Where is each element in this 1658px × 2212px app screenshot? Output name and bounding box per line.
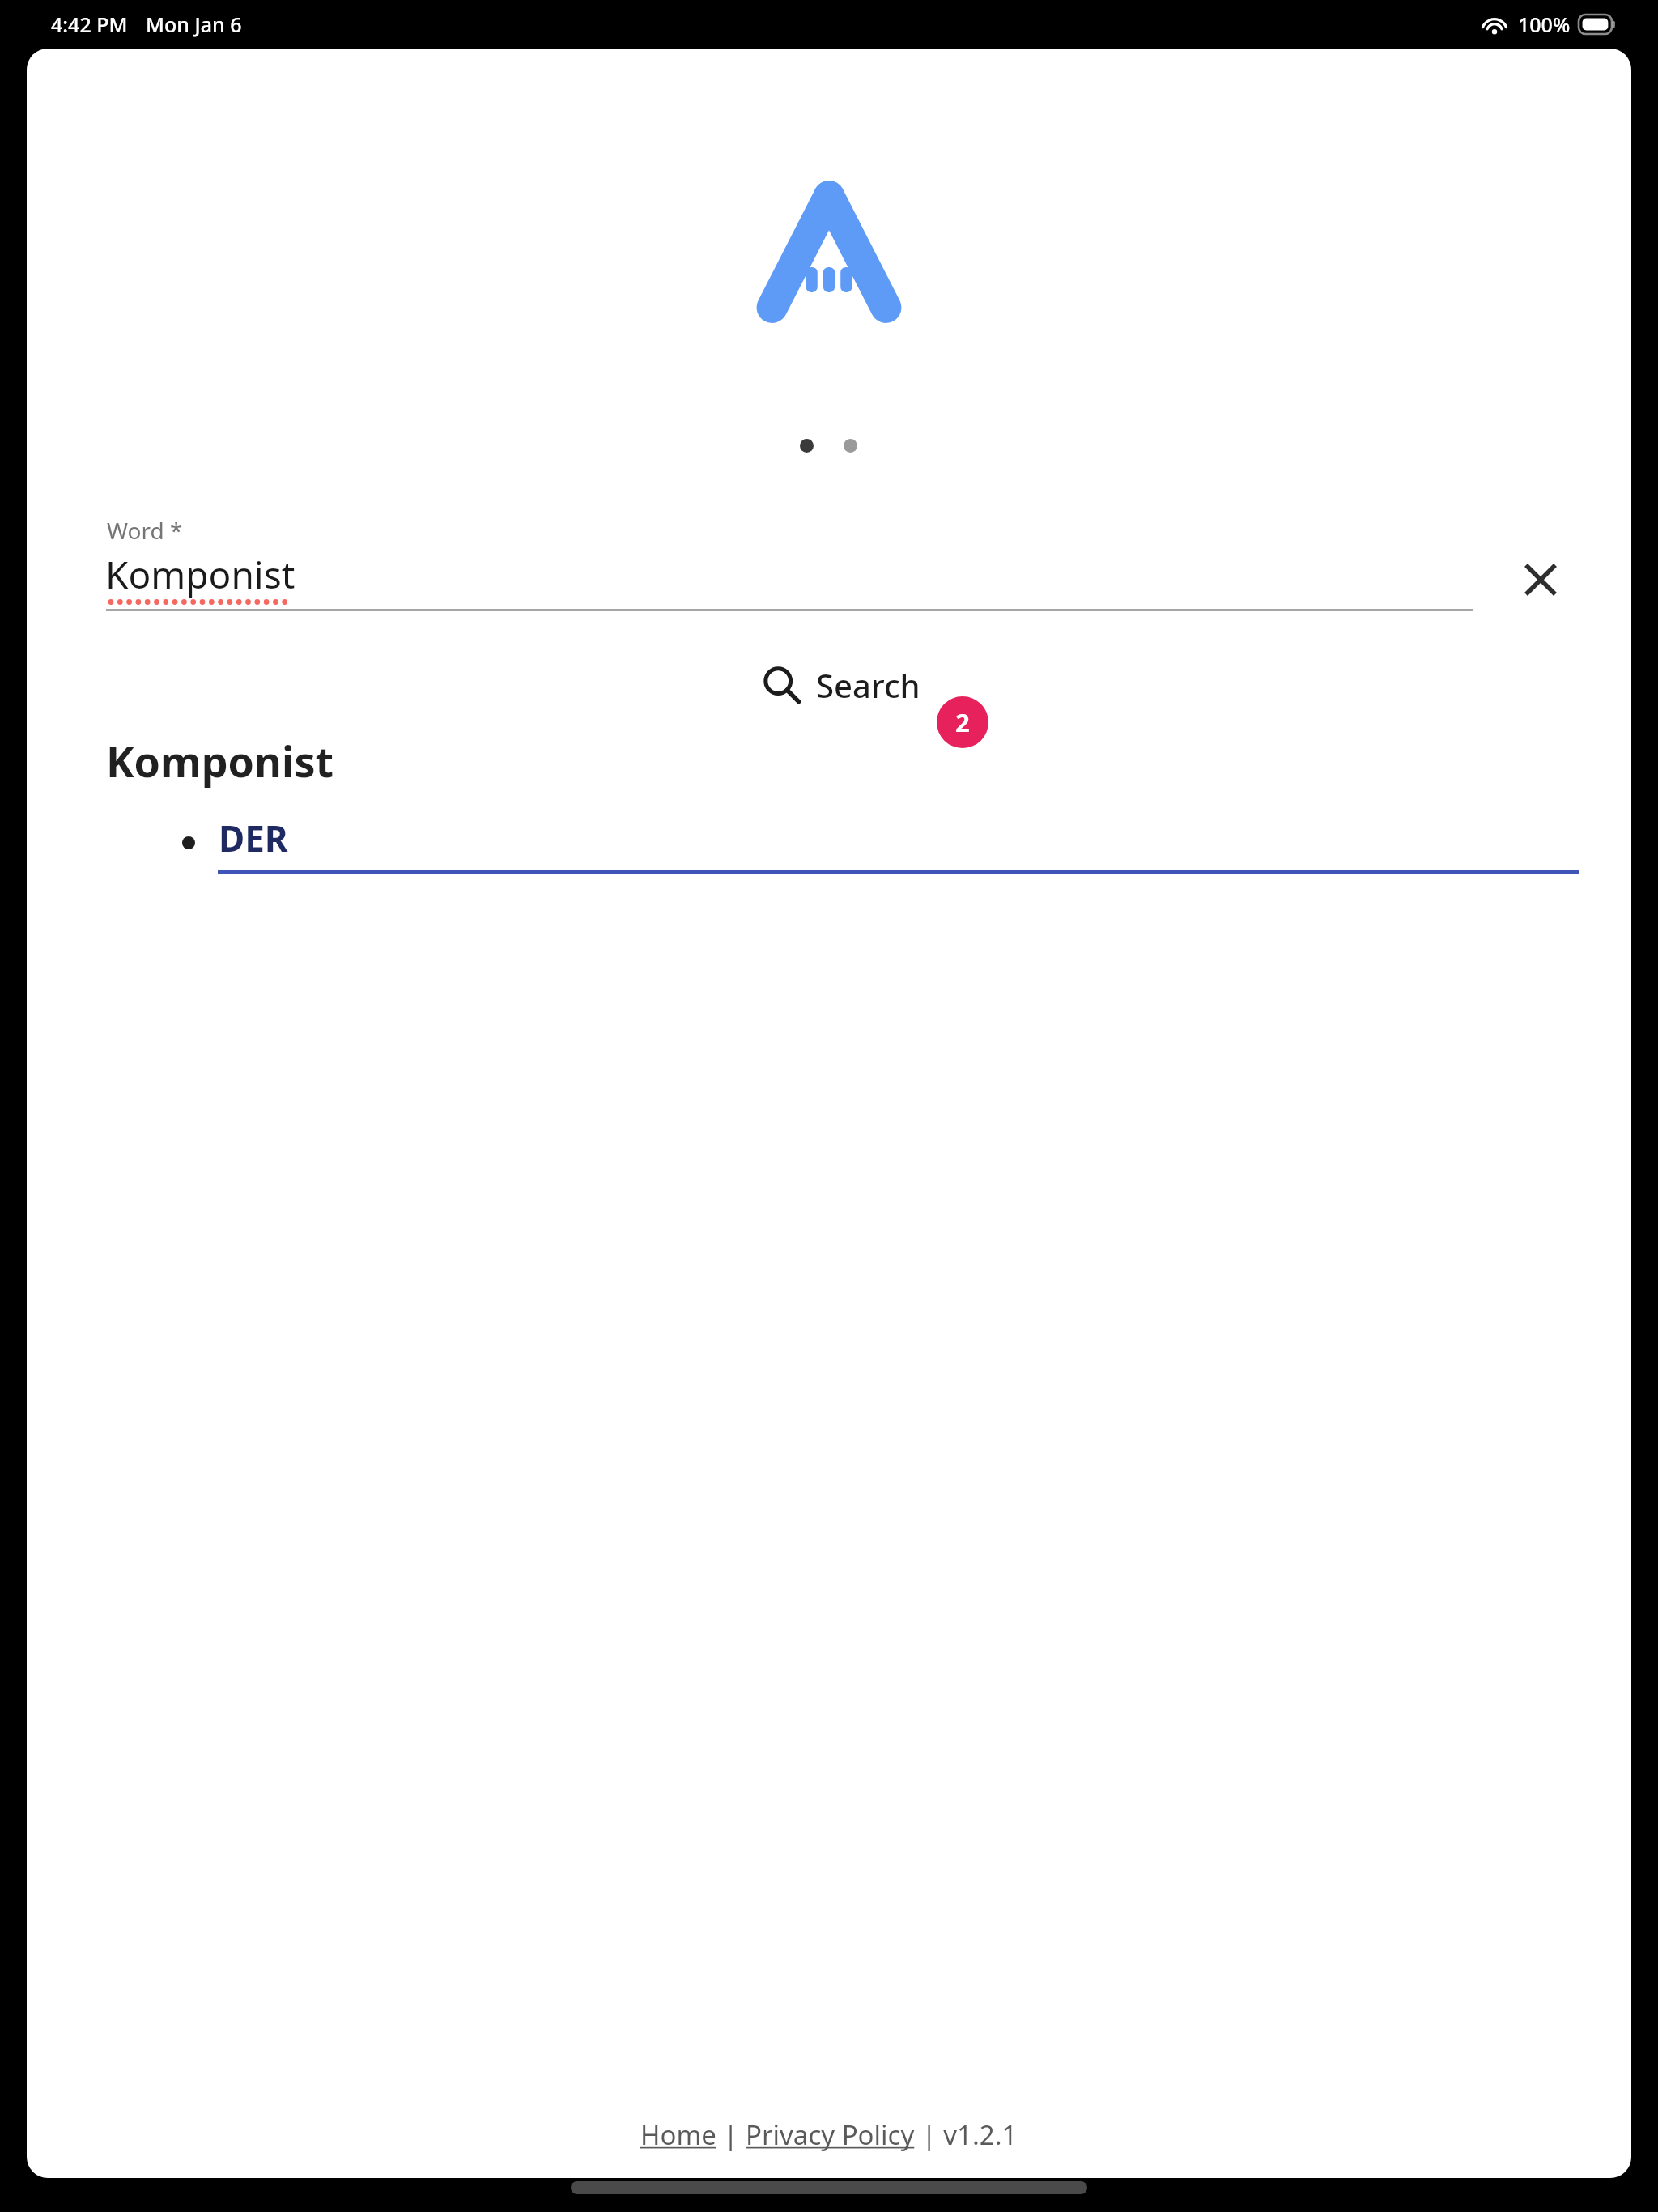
- staticText: DER: [219, 814, 288, 862]
- button[interactable]: Clear text: [1502, 541, 1579, 619]
- staticText: Privacy Policy: [746, 2116, 915, 2153]
- staticText: 4:42 PM: [51, 11, 128, 38]
- button[interactable]: Page 2: [844, 439, 857, 453]
- other: App logo: [757, 182, 901, 321]
- staticText: Mon Jan 6: [146, 11, 242, 38]
- button[interactable]: DER: [148, 806, 1581, 878]
- staticText: 2: [955, 705, 970, 739]
- button[interactable]: Home: [640, 2116, 716, 2153]
- staticText: Komponist: [106, 732, 334, 789]
- staticText: Search: [816, 663, 920, 707]
- staticText: 100%: [1518, 11, 1571, 38]
- staticText: Home: [640, 2116, 716, 2153]
- staticText: Word *: [107, 515, 183, 546]
- button[interactable]: Komponist: [105, 549, 1482, 612]
- staticText: Komponist: [105, 549, 295, 600]
- button[interactable]: 2 results: [937, 696, 988, 748]
- button[interactable]: Privacy Policy: [746, 2116, 915, 2153]
- button[interactable]: Search: [751, 648, 932, 722]
- button[interactable]: Page 1: [800, 439, 814, 453]
- staticText: |: [716, 2116, 746, 2153]
- staticText: | v1.2.1: [915, 2116, 1018, 2153]
